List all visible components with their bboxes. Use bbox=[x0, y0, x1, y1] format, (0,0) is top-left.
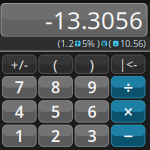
staticText: x bbox=[102, 38, 107, 49]
button[interactable]: 7 bbox=[2, 76, 36, 98]
staticText: 3 bbox=[87, 125, 96, 146]
button[interactable]: ( bbox=[39, 55, 72, 74]
staticText: 5 bbox=[51, 101, 60, 122]
button[interactable]: 5 bbox=[39, 101, 72, 122]
staticText: + bbox=[75, 38, 80, 49]
staticText: ) bbox=[89, 55, 94, 74]
staticText: 1 bbox=[15, 125, 24, 146]
button[interactable]: 9 bbox=[75, 76, 109, 98]
staticText: 4 bbox=[15, 101, 24, 122]
button[interactable]: ) bbox=[75, 55, 109, 74]
button[interactable]: +/- bbox=[2, 55, 36, 74]
staticText: × bbox=[123, 100, 133, 123]
staticText: 9 bbox=[87, 76, 96, 98]
staticText: ÷ bbox=[123, 76, 133, 99]
staticText: |<- bbox=[119, 56, 137, 72]
staticText: - bbox=[114, 38, 117, 49]
staticText: 6 bbox=[87, 101, 96, 122]
staticText: ( bbox=[108, 37, 111, 50]
button[interactable]: − bbox=[111, 125, 145, 146]
button[interactable]: 8 bbox=[39, 76, 72, 98]
staticText: -13.3056 bbox=[45, 4, 143, 36]
staticText: 2 bbox=[51, 125, 60, 146]
staticText: +/- bbox=[11, 55, 28, 73]
button[interactable]: 3 bbox=[75, 125, 109, 146]
button[interactable]: |<- bbox=[111, 55, 145, 74]
button[interactable]: 1 bbox=[2, 125, 36, 146]
staticText: 10.56) bbox=[120, 37, 146, 50]
button[interactable]: 2 bbox=[39, 125, 72, 146]
button[interactable]: 6 bbox=[75, 101, 109, 122]
button[interactable]: 4 bbox=[2, 101, 36, 122]
staticText: (1.2 bbox=[57, 37, 73, 50]
staticText: 7 bbox=[15, 76, 24, 98]
staticText: ( bbox=[53, 55, 58, 74]
staticText: − bbox=[123, 124, 133, 147]
button[interactable]: × bbox=[111, 101, 145, 122]
button[interactable]: ÷ bbox=[111, 76, 145, 98]
staticText: 8 bbox=[51, 76, 60, 98]
staticText: 5% ) bbox=[82, 37, 100, 50]
